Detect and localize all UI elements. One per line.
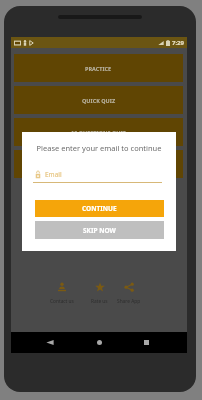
button[interactable]: Share App — [113, 278, 145, 304]
button[interactable]: Rate us — [83, 278, 115, 304]
staticText: 10 QUESTIONS QUIZ — [71, 129, 126, 136]
button[interactable]: Contact us — [46, 278, 78, 304]
staticText: Contact us — [50, 298, 74, 304]
staticText: Please enter your email to continue — [22, 143, 176, 153]
button[interactable]: QUICK QUIZ — [14, 86, 183, 114]
staticText: Share App — [117, 298, 141, 304]
button[interactable]: SKIP NOW — [35, 221, 164, 239]
button[interactable]: 10 QUESTIONS QUIZ — [14, 118, 183, 146]
button[interactable]: CONTINUE — [35, 200, 164, 217]
button[interactable]: Back — [36, 332, 64, 353]
staticText: PRACTICE — [85, 65, 112, 72]
button[interactable]: Home — [85, 332, 113, 353]
staticText: Email — [45, 170, 62, 179]
staticText: CONTINUE — [82, 204, 117, 213]
staticText: Rate us — [91, 298, 108, 304]
staticText: 7:29 — [172, 39, 184, 47]
staticText: SKIP NOW — [83, 226, 116, 235]
staticText: QUICK QUIZ — [82, 97, 116, 104]
button[interactable]: Recents — [132, 332, 160, 353]
button[interactable]: PRACTICE — [14, 54, 183, 82]
button[interactable]: 50 QUESTIONS QUIZ — [14, 150, 183, 178]
